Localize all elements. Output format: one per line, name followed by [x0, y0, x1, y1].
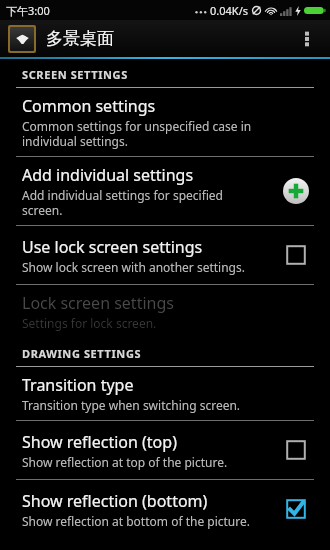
staticText: 0.04K/s — [210, 3, 248, 18]
button[interactable]: Transition type — [0, 367, 330, 420]
staticText: 多景桌面 — [46, 28, 114, 49]
staticText: Show reflection (bottom) — [22, 490, 208, 512]
staticText: Show reflection (top) — [22, 431, 177, 453]
button[interactable]: Common settings — [0, 88, 330, 156]
button[interactable]: Unchecked — [286, 245, 306, 265]
button[interactable]: Checked — [274, 487, 318, 531]
staticText: Common settings for unspecified case in … — [22, 118, 252, 149]
button[interactable]: More options — [292, 20, 322, 57]
button[interactable]: Add individual settings — [0, 157, 330, 225]
staticText: 下午3:00 — [6, 3, 50, 18]
staticText: Show reflection at top of the picture. — [22, 454, 228, 470]
button[interactable]: Unchecked — [274, 233, 318, 277]
button[interactable]: Show reflection (bottom) — [0, 480, 330, 538]
staticText: Settings for lock screen. — [22, 315, 157, 331]
staticText: Add individual settings — [22, 164, 194, 186]
staticText: Use lock screen settings — [22, 236, 203, 258]
button[interactable]: Show reflection (top) — [0, 421, 330, 479]
staticText: Lock screen settings — [22, 292, 174, 314]
other: Add — [283, 178, 309, 204]
staticText: Add individual settings for specified sc… — [22, 187, 224, 218]
staticText: Transition type when switching screen. — [22, 397, 241, 413]
staticText: SCREEN SETTINGS — [22, 67, 128, 82]
button[interactable]: Use lock screen settings — [0, 226, 330, 284]
button[interactable]: Add — [274, 169, 318, 213]
staticText: Show lock screen with another settings. — [22, 259, 245, 275]
staticText: Show reflection at bottom of the picture… — [22, 513, 250, 529]
button[interactable]: Checked — [286, 499, 306, 519]
button[interactable]: Unchecked — [274, 428, 318, 472]
staticText: DRAWING SETTINGS — [22, 346, 142, 361]
staticText: Transition type — [22, 374, 134, 396]
button[interactable]: Lock screen settings — [0, 285, 330, 338]
staticText: Common settings — [22, 95, 156, 117]
button[interactable]: App icon — [10, 27, 34, 51]
button[interactable]: Unchecked — [286, 440, 306, 460]
